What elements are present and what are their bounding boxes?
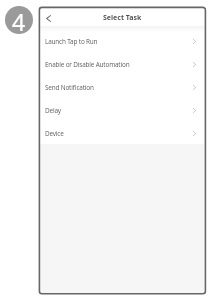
button[interactable]: Launch Tap to Run: [40, 30, 204, 53]
button[interactable]: Send Notification: [40, 76, 204, 99]
button[interactable]: Step 4: [5, 6, 33, 34]
button[interactable]: Back: [39, 9, 58, 27]
staticText: Delay: [45, 106, 61, 115]
staticText: Send Notification: [45, 83, 94, 92]
staticText: 4: [12, 6, 26, 34]
staticText: Launch Tap to Run: [45, 37, 98, 46]
button[interactable]: Enable or Disable Automation: [40, 53, 204, 76]
staticText: Select Task: [103, 13, 142, 23]
button[interactable]: Device: [40, 122, 204, 145]
staticText: Device: [45, 129, 64, 138]
staticText: Enable or Disable Automation: [45, 60, 130, 69]
button[interactable]: Delay: [40, 99, 204, 122]
